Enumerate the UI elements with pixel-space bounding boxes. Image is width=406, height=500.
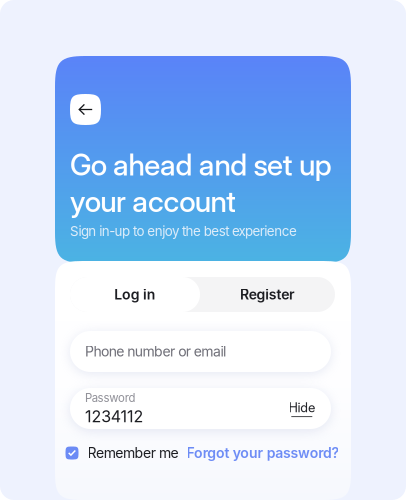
staticText: Phone number or email (85, 343, 226, 360)
button[interactable]: Remember me (65, 444, 178, 461)
staticText: Sign in-up to enjoy the best experience (70, 223, 297, 239)
button[interactable]: Log in (70, 277, 200, 312)
staticText: Password (85, 391, 136, 405)
staticText: Forgot your password? (186, 444, 339, 461)
staticText: Log in (114, 286, 156, 303)
button[interactable]: Back (70, 94, 101, 125)
staticText: Remember me (87, 444, 178, 461)
button[interactable]: Hide (289, 400, 315, 417)
button[interactable]: Register (200, 277, 335, 312)
staticText: your account (70, 183, 236, 219)
button[interactable]: Forgot your password? (186, 444, 339, 461)
staticText: 1234112 (85, 407, 144, 426)
staticText: Go ahead and set up (70, 147, 332, 182)
staticText: Hide (289, 400, 315, 415)
staticText: Register (240, 286, 295, 303)
